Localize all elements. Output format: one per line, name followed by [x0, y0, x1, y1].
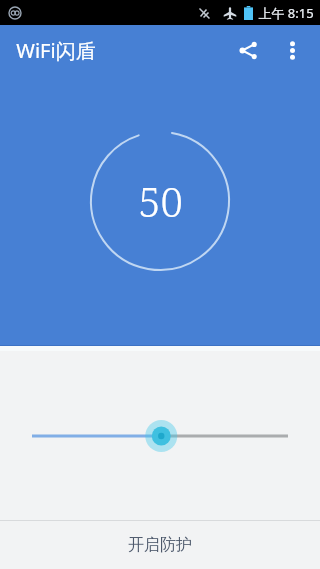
staticText: 上午 8:15 [258, 4, 314, 22]
button[interactable]: WiFi闪盾 [14, 33, 98, 68]
button[interactable]: 开启防护 [0, 521, 320, 569]
staticText: 开启防护 [128, 535, 192, 555]
button[interactable]: More options [270, 28, 314, 72]
button[interactable]: Share [226, 28, 270, 72]
button[interactable]: Protection level slider [0, 414, 320, 458]
staticText: 50 [138, 174, 183, 228]
staticText: WiFi闪盾 [16, 37, 96, 64]
